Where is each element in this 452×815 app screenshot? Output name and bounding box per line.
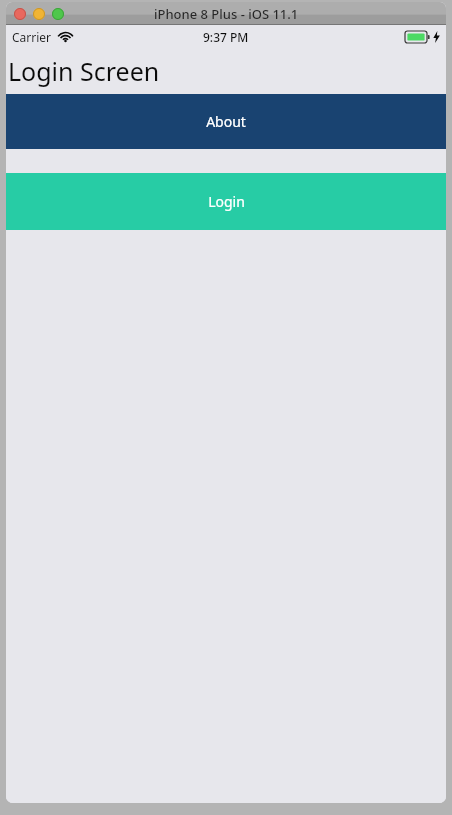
button[interactable]: Minimize xyxy=(33,8,45,20)
staticText: Login xyxy=(208,192,245,211)
staticText: iPhone 8 Plus - iOS 11.1 xyxy=(154,5,299,23)
other: Charging xyxy=(433,31,440,43)
staticText: Login Screen xyxy=(8,54,160,88)
staticText: About xyxy=(206,112,246,131)
staticText: 9:37 PM xyxy=(203,29,249,45)
button[interactable]: Close xyxy=(14,8,26,20)
other: Battery xyxy=(405,31,430,43)
button[interactable]: Zoom xyxy=(52,8,64,20)
button[interactable]: Login xyxy=(6,173,446,230)
staticText: Carrier xyxy=(12,29,52,45)
other: Wi-Fi xyxy=(58,31,73,43)
button[interactable]: About xyxy=(6,94,446,149)
